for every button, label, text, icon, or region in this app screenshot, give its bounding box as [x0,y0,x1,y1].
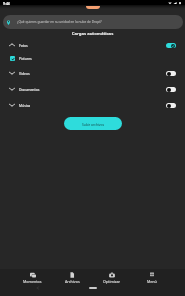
other: Expand [9,86,15,92]
button[interactable]: Location [3,15,183,29]
staticText: Optimizar [103,279,121,284]
button[interactable]: Toggle [166,87,176,92]
staticText: Menú [147,279,157,284]
button[interactable]: Expand [0,66,185,80]
button[interactable]: Momentos [13,272,52,284]
staticText: Videos [19,71,30,76]
button[interactable]: Pictures [0,52,185,64]
button[interactable]: Expand [0,82,185,96]
staticText: ¿Qué quieres guardar en su unidad en la … [17,20,102,24]
staticText: Archivos [65,279,80,284]
button[interactable]: Collapse [0,38,185,52]
other: Location [7,20,10,25]
other: Collapse [9,42,15,48]
button[interactable]: Toggle [166,103,176,108]
other: Expand [9,102,15,108]
staticText: Documentos [19,87,40,92]
button[interactable]: Toggle [166,71,176,76]
button[interactable]: Subir archivos [64,117,122,130]
button[interactable]: Archivos [52,272,92,284]
staticText: Pictures [19,56,32,61]
staticText: Momentos [23,279,42,284]
button[interactable]: Optimizar [92,272,132,284]
staticText: Música [19,103,31,108]
button[interactable]: Expand [0,98,185,112]
staticText: Fotos [19,43,28,48]
button[interactable]: Toggle [166,43,176,48]
staticText: Cargas automáticas [0,31,185,37]
staticText: 9:44 [3,1,10,6]
button[interactable]: Menú [132,272,172,284]
other: Expand [9,70,15,76]
staticText: Subir archivos [82,122,105,126]
